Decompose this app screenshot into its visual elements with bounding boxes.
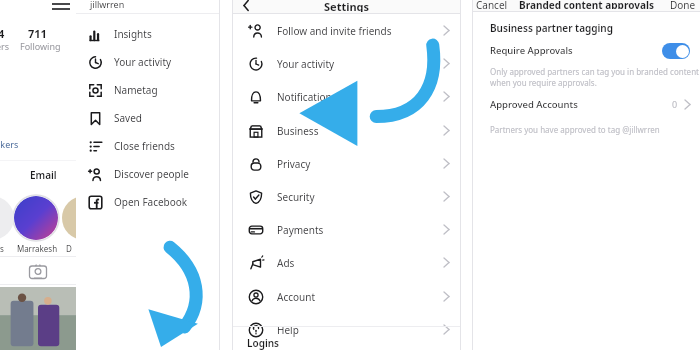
- staticText: Following: [20, 40, 61, 52]
- staticText: Your activity: [277, 57, 335, 71]
- staticText: 4: [0, 26, 5, 41]
- staticText: ckers: [0, 138, 19, 150]
- staticText: Marrakesh: [8, 243, 66, 254]
- staticText: Require Approvals: [490, 44, 573, 57]
- button[interactable]: Payments: [233, 213, 460, 246]
- button[interactable]: [0, 287, 76, 350]
- staticText: Business: [277, 124, 319, 138]
- button[interactable]: Saved: [76, 104, 219, 132]
- button[interactable]: Tagged photos: [24, 260, 52, 282]
- button[interactable]: Notifications: [233, 80, 460, 113]
- button[interactable]: Your activity: [76, 48, 219, 76]
- button[interactable]: Nametag: [76, 76, 219, 104]
- button[interactable]: Privacy: [233, 147, 460, 180]
- staticText: Open Facebook: [114, 195, 188, 209]
- staticText: Saved: [114, 111, 142, 125]
- staticText: Notifications: [277, 90, 337, 104]
- button[interactable]: Ads: [233, 246, 460, 279]
- staticText: Insights: [114, 27, 152, 41]
- staticText: s: [0, 243, 4, 254]
- button[interactable]: Discover people: [76, 160, 219, 188]
- button[interactable]: Insights: [76, 20, 219, 48]
- staticText: Only approved partners can tag you in br…: [490, 66, 699, 88]
- button[interactable]: [14, 196, 58, 240]
- button[interactable]: About: [233, 346, 460, 350]
- button[interactable]: Security: [233, 180, 460, 213]
- staticText: 0: [672, 98, 678, 110]
- button[interactable]: Require Approvals: [473, 41, 700, 60]
- button[interactable]: Approved Accounts: [473, 93, 700, 115]
- staticText: Logins: [247, 336, 280, 350]
- other: Back: [241, 0, 251, 12]
- button[interactable]: Help: [233, 313, 460, 346]
- staticText: Business partner tagging: [490, 21, 613, 35]
- staticText: D: [66, 243, 72, 254]
- staticText: 711: [28, 26, 47, 41]
- staticText: Email: [30, 168, 57, 182]
- staticText: Branded content approvals: [519, 0, 654, 9]
- button[interactable]: Account: [233, 280, 460, 313]
- staticText: Done: [670, 0, 696, 9]
- staticText: Help: [277, 323, 299, 337]
- staticText: Ads: [277, 256, 295, 270]
- staticText: Settings: [324, 0, 370, 12]
- staticText: jillwrren: [90, 0, 125, 10]
- button[interactable]: Email: [8, 165, 78, 185]
- staticText: Security: [277, 190, 315, 204]
- button[interactable]: Your activity: [233, 47, 460, 80]
- staticText: Privacy: [277, 157, 311, 171]
- button[interactable]: Follow and invite friends: [233, 14, 460, 47]
- button[interactable]: Business: [233, 114, 460, 147]
- staticText: Discover people: [114, 167, 189, 181]
- staticText: Follow and invite friends: [277, 24, 392, 38]
- staticText: Approved Accounts: [490, 98, 578, 111]
- button[interactable]: Cancel: [476, 0, 508, 9]
- staticText: Partners you have approved to tag @jillw…: [490, 124, 660, 135]
- button[interactable]: Close friends: [76, 132, 219, 160]
- staticText: Nametag: [114, 83, 158, 97]
- staticText: Your activity: [114, 55, 172, 69]
- staticText: Account: [277, 290, 316, 304]
- staticText: ers: [0, 40, 10, 52]
- staticText: Payments: [277, 223, 324, 237]
- staticText: Cancel: [476, 0, 508, 9]
- button[interactable]: Done: [670, 0, 696, 9]
- staticText: Close friends: [114, 139, 175, 153]
- button[interactable]: Open Facebook: [76, 188, 219, 216]
